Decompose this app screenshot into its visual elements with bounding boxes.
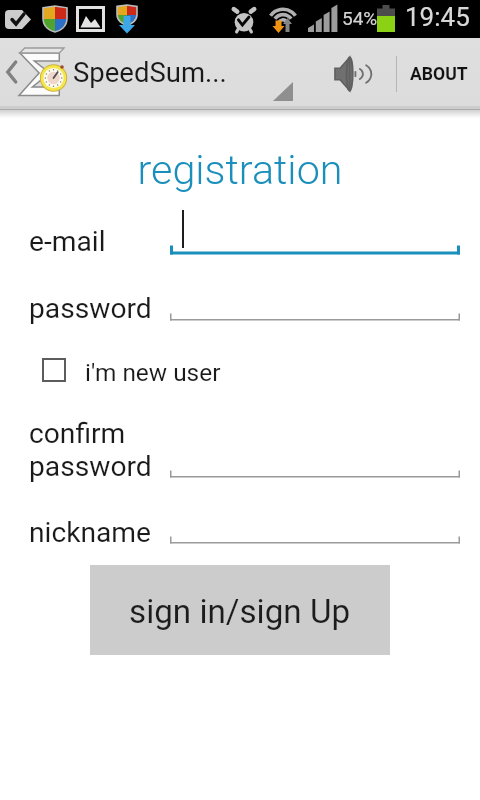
staticText: nickname [29,516,152,549]
button[interactable]: sign in/sign Up [90,565,390,655]
staticText: 54% [342,7,378,29]
button[interactable]: Sound [319,41,385,107]
staticText: confirm [29,417,126,450]
staticText: e-mail [29,225,106,258]
staticText: password [29,292,152,325]
button[interactable]: Navigate up [0,38,227,106]
button[interactable]: ABOUT [397,40,480,108]
staticText: ABOUT [410,64,468,85]
staticText: 19:45 [405,2,470,32]
staticText: sign in/sign Up [129,592,351,631]
staticText: password [29,450,152,483]
staticText: registration [0,146,480,194]
staticText: SpeedSum... [73,56,227,88]
staticText: i'm new user [85,358,221,387]
other: Navigate up [0,50,18,94]
